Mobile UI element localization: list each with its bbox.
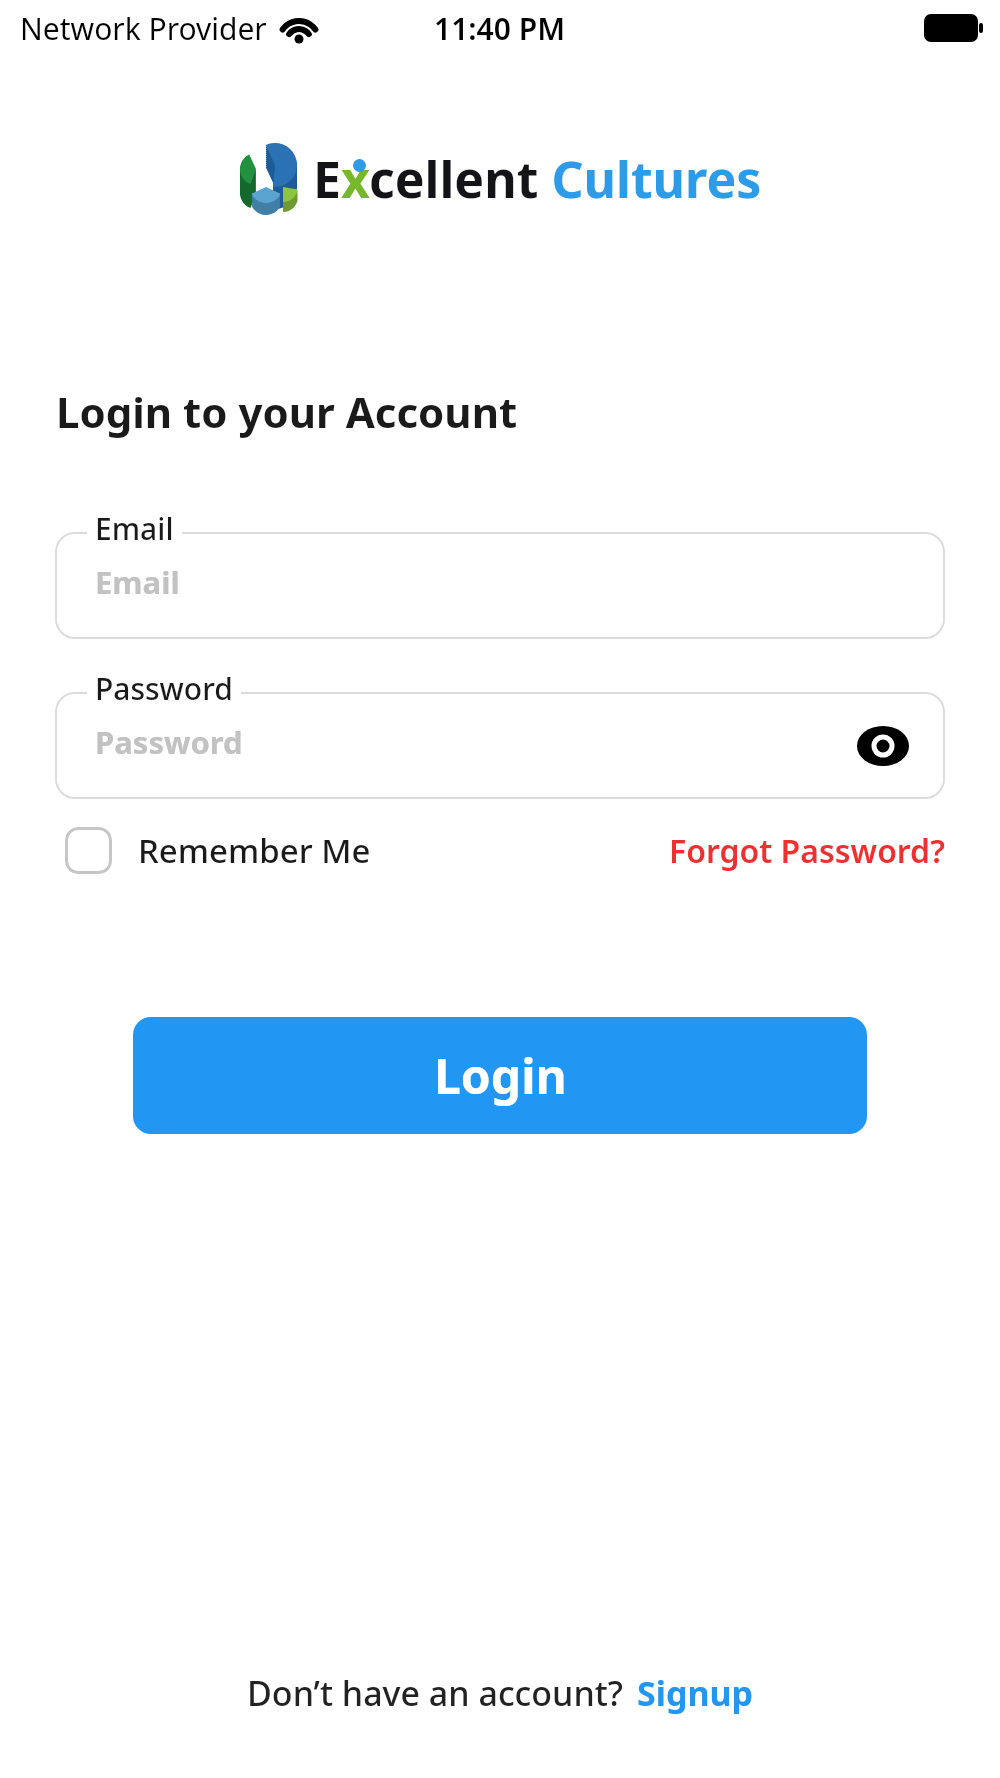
button[interactable]: Login: [133, 1017, 867, 1134]
button[interactable]: Email: [55, 532, 945, 639]
staticText: Email: [95, 508, 174, 549]
staticText: Password: [95, 721, 243, 763]
staticText: 11:40 PM: [434, 8, 566, 49]
staticText: Login to your Account: [56, 383, 518, 440]
button[interactable]: Password: [55, 692, 945, 799]
staticText: Email: [95, 561, 180, 603]
staticText: Don’t have an account?: [247, 1670, 623, 1716]
button[interactable]: Forgot Password?: [669, 829, 945, 873]
button[interactable]: [65, 827, 112, 874]
staticText: Network Provider: [20, 8, 267, 49]
staticText: Remember Me: [138, 828, 371, 873]
staticText: Password: [95, 668, 233, 709]
staticText: Login: [434, 1043, 567, 1108]
button[interactable]: Signup: [637, 1670, 754, 1716]
staticText: Excellent Cultures: [313, 145, 762, 213]
